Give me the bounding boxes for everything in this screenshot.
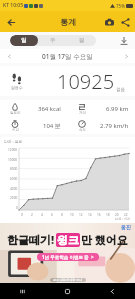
staticText: 6.99 km xyxy=(106,105,129,113)
button[interactable]: Advertisement xyxy=(0,223,135,283)
staticText: 단위 : 걸음 xyxy=(4,139,23,144)
staticText: 웅진 xyxy=(121,224,131,230)
staticText: 2.79 km/h xyxy=(100,122,129,130)
button[interactable]: 거리 xyxy=(67,100,135,117)
button[interactable]: 1년 무료학습 이벤트 중 xyxy=(42,254,94,260)
staticText: 걸음수 xyxy=(11,85,23,90)
staticText: 20 xyxy=(115,213,119,217)
button[interactable]: Previous day xyxy=(3,50,15,62)
staticText: 통계 xyxy=(60,17,76,27)
button[interactable]: 시간 xyxy=(0,117,67,134)
button[interactable]: Recents xyxy=(0,283,45,299)
staticText: 주 xyxy=(50,37,56,44)
staticText: 14 xyxy=(88,213,92,217)
staticText: 윙크 xyxy=(57,233,79,247)
button[interactable]: 칼로리 xyxy=(0,100,67,117)
staticText: 01월 17일 수요일 xyxy=(42,52,93,61)
staticText: 단위 : 시간 xyxy=(115,217,131,221)
staticText: 속도 xyxy=(79,128,86,132)
staticText: 월 xyxy=(79,37,85,44)
staticText: 1년 무료학습 이벤트 중 xyxy=(42,254,89,260)
button[interactable]: 월 xyxy=(67,35,96,46)
button[interactable]: Camera xyxy=(101,14,117,30)
staticText: 104 분 xyxy=(43,122,61,130)
staticText: 일 xyxy=(21,37,27,44)
staticText: 8 xyxy=(61,213,63,217)
staticText: 칼로리 xyxy=(10,111,21,115)
staticText: 6 xyxy=(51,213,53,217)
staticText: 10925 xyxy=(57,68,115,95)
staticText: 10000 xyxy=(8,158,18,162)
button[interactable]: Share xyxy=(117,14,133,30)
staticText: 4 xyxy=(41,213,43,217)
button[interactable]: Back xyxy=(2,13,20,31)
staticText: 364 kcal xyxy=(38,105,61,113)
staticText: 0 xyxy=(16,206,18,210)
button[interactable]: 속도 xyxy=(67,117,135,134)
button[interactable]: Download xyxy=(117,34,131,48)
staticText: 광고 내용에 대한 안내 xyxy=(53,278,83,282)
button[interactable]: 주 xyxy=(38,35,67,46)
staticText: 거리 xyxy=(79,111,86,115)
staticText: 2 xyxy=(31,213,33,217)
staticText: 12 xyxy=(79,213,83,217)
button[interactable]: 일 xyxy=(10,35,38,46)
staticText: 걸음 xyxy=(116,87,125,93)
staticText: 22 xyxy=(124,213,128,217)
staticText: KT 10:05 xyxy=(3,2,24,9)
button[interactable]: Back xyxy=(90,283,135,299)
staticText: 한글떼기! xyxy=(7,232,55,247)
staticText: > xyxy=(91,254,94,260)
staticText: 4000 xyxy=(10,187,18,191)
staticText: 시간 xyxy=(12,128,19,132)
staticText: 만 했어요 xyxy=(81,232,128,247)
staticText: 2000 xyxy=(10,196,18,200)
staticText: 16 xyxy=(97,213,101,217)
staticText: 8000 xyxy=(10,167,18,171)
button[interactable]: Home xyxy=(45,283,90,299)
staticText: 10 xyxy=(70,213,74,217)
staticText: 18 xyxy=(106,213,110,217)
button[interactable]: Next day xyxy=(120,50,132,62)
staticText: 12000 xyxy=(8,148,18,152)
staticText: 6000 xyxy=(10,177,18,181)
staticText: 75% xyxy=(116,3,125,9)
staticText: 0 xyxy=(21,213,23,217)
